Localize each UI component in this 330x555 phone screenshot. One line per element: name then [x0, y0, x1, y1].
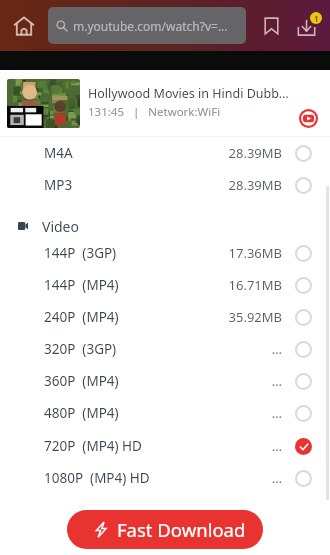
staticText: 1080P (MP4) HD: [44, 469, 150, 487]
button[interactable]: 144P (MP4): [0, 270, 330, 300]
staticText: Video: [42, 217, 79, 236]
staticText: …: [271, 372, 282, 390]
staticText: 720P (MP4) HD: [44, 437, 142, 455]
button[interactable]: 1080P (MP4) HD: [0, 463, 330, 493]
button[interactable]: 240P (MP4): [0, 302, 330, 332]
staticText: 360P (MP4): [44, 372, 119, 390]
staticText: 35.92MB: [228, 308, 282, 326]
staticText: …: [271, 404, 282, 422]
staticText: …: [271, 469, 282, 487]
staticText: 131:45 | Network:WiFi: [88, 104, 221, 120]
button[interactable]: 360P (MP4): [0, 366, 330, 396]
staticText: 1: [314, 13, 319, 24]
button[interactable]: 144P (3GP): [0, 238, 330, 268]
staticText: 144P (3GP): [44, 244, 117, 262]
button[interactable]: Home: [10, 12, 38, 40]
staticText: 17.36MB: [228, 244, 282, 262]
staticText: 480P (MP4): [44, 404, 119, 422]
staticText: 28.39MB: [228, 176, 282, 194]
staticText: M4A: [44, 144, 73, 162]
staticText: 240P (MP4): [44, 308, 119, 326]
staticText: …: [271, 340, 282, 358]
staticText: Hollywood Movies in Hindi Dubb…: [88, 85, 289, 102]
button[interactable]: Bookmark: [258, 12, 285, 39]
staticText: Fast Download: [117, 517, 246, 542]
staticText: m.youtube.com/watch?v=...: [73, 18, 228, 34]
button[interactable]: M4A: [0, 138, 330, 168]
button[interactable]: 320P (3GP): [0, 334, 330, 364]
button[interactable]: 720P (MP4) HD: [0, 431, 330, 461]
staticText: 16.71MB: [228, 276, 282, 294]
button[interactable]: Downloads: [295, 11, 323, 39]
button[interactable]: Play on YouTube: [297, 107, 319, 129]
button[interactable]: MP3: [0, 170, 330, 200]
staticText: MP3: [44, 176, 73, 194]
staticText: 28.39MB: [228, 144, 282, 162]
staticText: 320P (3GP): [44, 340, 117, 358]
staticText: …: [271, 437, 282, 455]
button[interactable]: 480P (MP4): [0, 398, 330, 428]
button[interactable]: Fast Download: [67, 510, 263, 549]
button[interactable]: m.youtube.com/watch?v=...: [48, 7, 246, 44]
staticText: 144P (MP4): [44, 276, 119, 294]
